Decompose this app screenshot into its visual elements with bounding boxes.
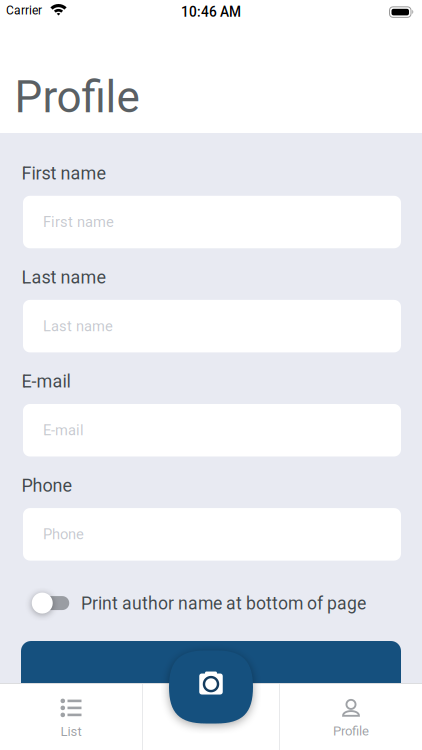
- staticText: Profile: [14, 71, 139, 123]
- button[interactable]: First name: [23, 196, 401, 248]
- button[interactable]: Save: [21, 641, 401, 683]
- staticText: E-mail: [21, 371, 70, 392]
- staticText: Last name: [43, 317, 113, 335]
- staticText: E-mail: [43, 422, 84, 439]
- button[interactable]: Take photo: [169, 650, 253, 723]
- staticText: 10:46 AM: [181, 4, 241, 20]
- button[interactable]: Profile: [280, 683, 422, 749]
- staticText: Print author name at bottom of page: [81, 593, 366, 614]
- button[interactable]: List: [0, 683, 142, 749]
- staticText: Phone: [43, 526, 84, 543]
- button[interactable]: E-mail: [23, 404, 401, 456]
- staticText: List: [60, 724, 81, 739]
- staticText: First name: [43, 213, 114, 231]
- staticText: First name: [21, 163, 106, 184]
- staticText: Carrier: [6, 3, 42, 18]
- button[interactable]: Phone: [23, 508, 401, 561]
- button[interactable]: Last name: [23, 300, 401, 352]
- staticText: Profile: [333, 723, 369, 739]
- staticText: Phone: [21, 475, 72, 496]
- staticText: Last name: [21, 267, 106, 288]
- button[interactable]: Print author name at bottom of page: [23, 593, 401, 614]
